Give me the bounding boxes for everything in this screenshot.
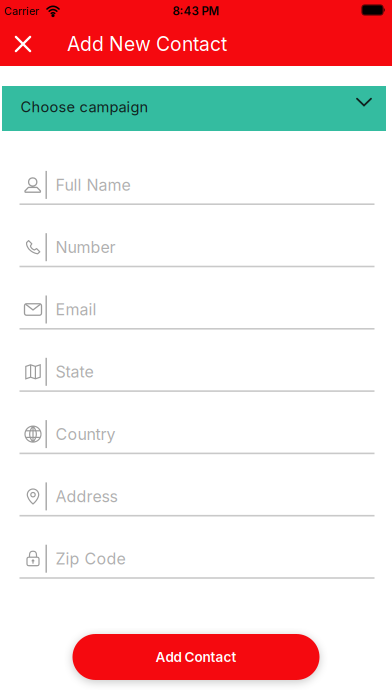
staticText: Email	[55, 300, 96, 319]
staticText: Zip Code	[55, 549, 125, 568]
staticText: State	[55, 362, 93, 381]
staticText: 8:43 PM	[172, 4, 219, 18]
staticText: Add Contact	[155, 649, 236, 665]
staticText: Country	[55, 424, 115, 444]
staticText: Address	[55, 487, 117, 506]
staticText: Number	[55, 237, 115, 257]
staticText: Choose campaign	[20, 98, 148, 116]
staticText: Carrier	[4, 4, 39, 17]
staticText: Full Name	[55, 175, 130, 195]
staticText: Add New Contact	[67, 32, 227, 56]
